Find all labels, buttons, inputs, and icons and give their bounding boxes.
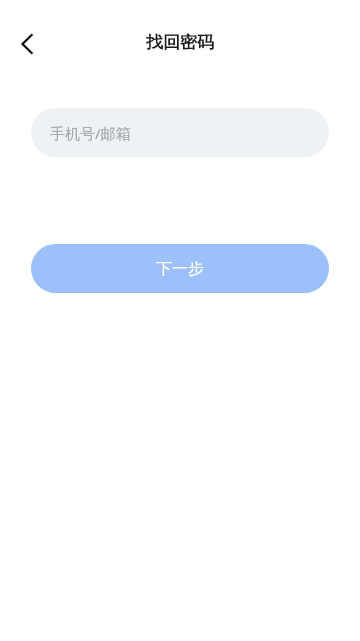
button[interactable]: Back — [6, 22, 50, 66]
staticText: 手机号/邮箱 — [50, 123, 131, 143]
staticText: 找回密码 — [146, 32, 214, 53]
staticText: 下一步 — [156, 259, 204, 279]
button[interactable]: 手机号/邮箱 — [31, 108, 329, 157]
button[interactable]: 下一步 — [31, 244, 329, 293]
